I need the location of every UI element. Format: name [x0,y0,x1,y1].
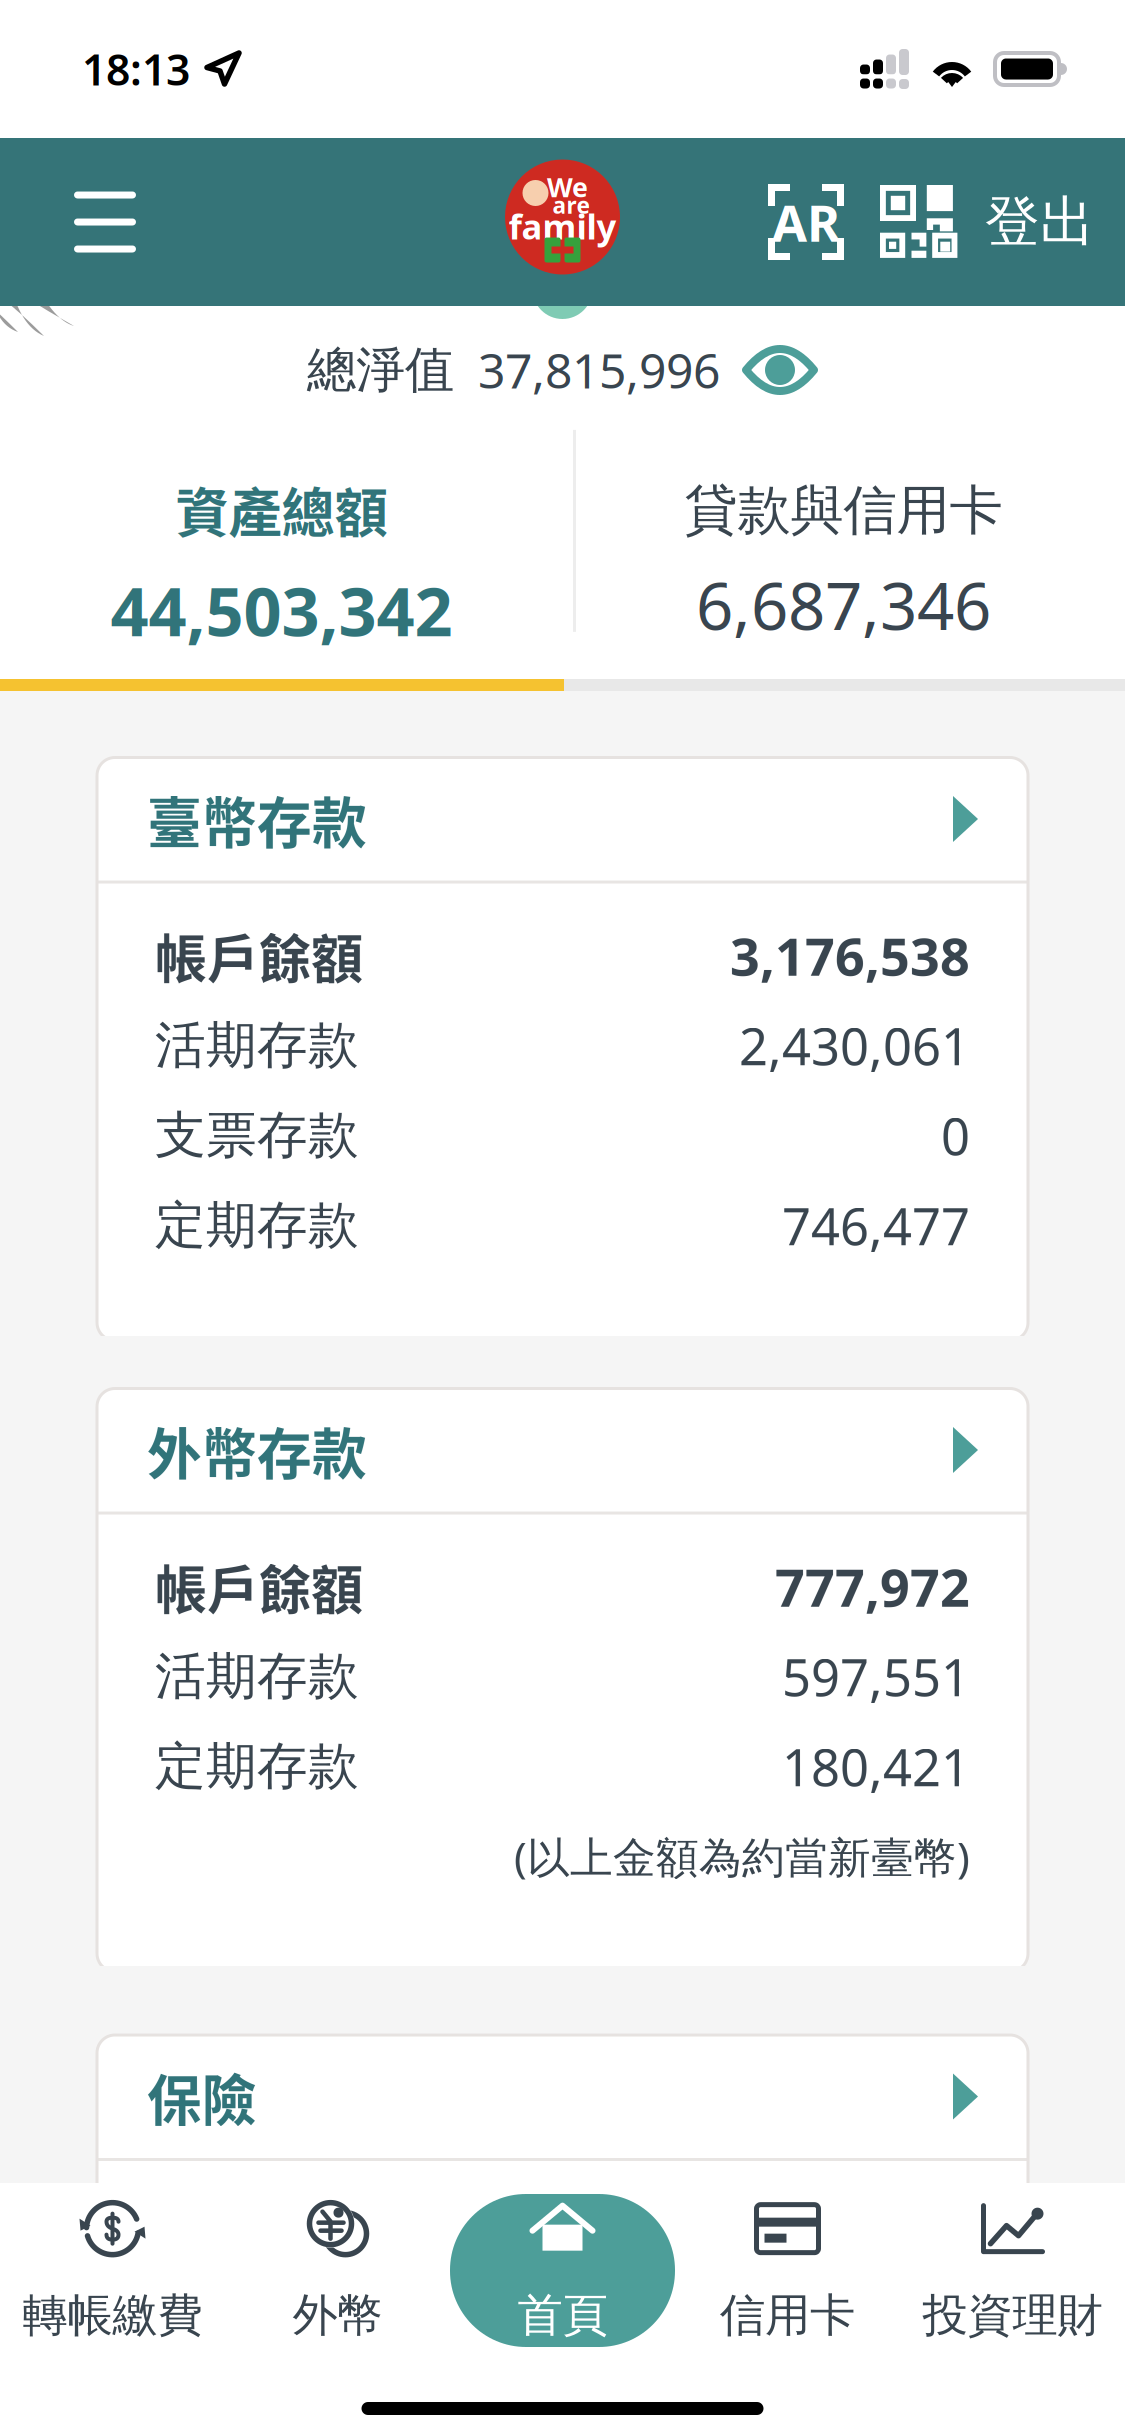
staticText: 定期存款 [155,1194,359,1257]
button[interactable]: 保險 [97,2035,1028,2158]
staticText: AR [772,188,840,256]
button[interactable]: AR [737,138,845,306]
button[interactable]: 外幣 [225,2194,450,2347]
button[interactable]: 投資理財 [900,2194,1125,2347]
staticText: 資產總額 [175,471,387,548]
staticText: 6,687,346 [696,561,991,648]
staticText: 活期存款 [155,1645,359,1708]
staticText: 臺幣存款 [147,779,367,859]
staticText: 0 [941,1102,970,1169]
staticText: 活期存款 [155,1014,359,1077]
staticText: 外幣 [292,2288,382,2343]
staticText: 登出 [985,188,1095,255]
button[interactable]: Menu [0,138,176,305]
staticText: 定期存款 [155,1735,359,1798]
button[interactable]: QR code scanner [845,137,961,307]
staticText: 3,176,538 [730,921,970,990]
staticText: 37,815,996 [454,338,720,402]
button[interactable]: Toggle balance visibility [720,340,818,400]
staticText: are [552,190,590,220]
staticText: 保險 [147,2057,257,2136]
staticText: family [508,203,616,249]
staticText: 首頁 [517,2288,607,2343]
button[interactable]: 外幣存款 [97,1388,1028,1511]
button[interactable]: 登出 [961,146,1125,297]
staticText: 支票存款 [155,1104,359,1167]
staticText: 180,421 [782,1733,970,1800]
button[interactable]: 信用卡 [675,2194,900,2347]
staticText: 投資理財 [922,2288,1102,2343]
button[interactable]: 轉帳繳費 [0,2194,225,2347]
staticText: 777,972 [775,1552,970,1621]
staticText: 18:13 [82,41,190,97]
staticText: 帳戶餘額 [155,918,363,993]
staticText: 轉帳繳費 [22,2288,202,2343]
staticText: 2,430,061 [739,1012,970,1079]
staticText: We [547,169,588,205]
staticText: 597,551 [782,1643,970,1710]
button[interactable]: 首頁 [450,2194,675,2347]
staticText: (以上金額為約當新臺幣) [514,1828,970,1885]
staticText: 44,503,342 [110,566,452,655]
staticText: 信用卡 [720,2288,855,2343]
staticText: 746,477 [782,1192,970,1259]
staticText: 帳戶餘額 [155,1549,363,1624]
staticText: 總淨值 [307,340,454,400]
staticText: 貸款與信用卡 [684,478,1002,543]
staticText: 外幣存款 [147,1410,367,1490]
button[interactable]: 臺幣存款 [97,757,1028,880]
